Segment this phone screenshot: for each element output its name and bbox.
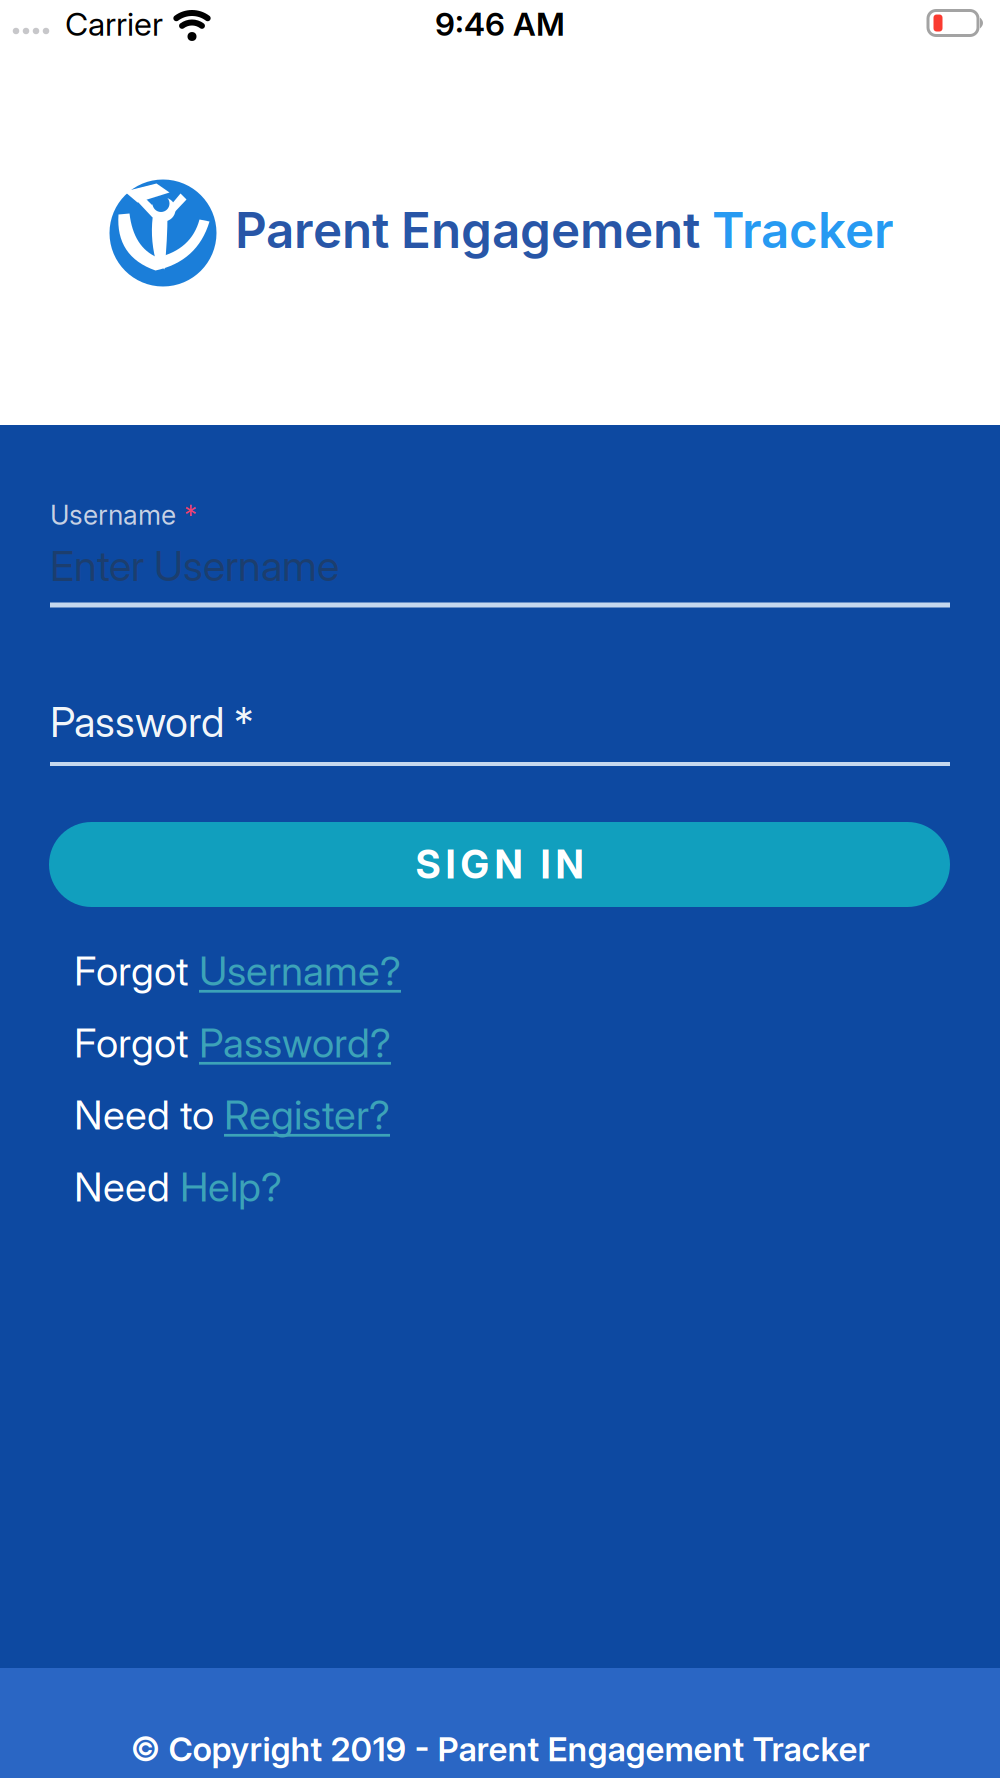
button[interactable]: Forgot <box>74 947 926 995</box>
staticText: Carrier <box>65 5 163 43</box>
staticText: SIGN IN <box>415 842 583 887</box>
staticText: Enter Username <box>50 542 339 590</box>
staticText: Forgot <box>74 947 199 995</box>
button[interactable]: Forgot <box>74 1019 926 1067</box>
staticText: Need to <box>74 1091 224 1139</box>
button[interactable]: Need to <box>74 1091 926 1139</box>
staticText: 9:46 AM <box>435 5 565 43</box>
staticText: Forgot <box>74 1019 199 1067</box>
button[interactable]: SIGN IN <box>49 822 950 907</box>
staticText: Parent Engagement <box>235 201 712 259</box>
staticText: © Copyright 2019 - Parent Engagement Tra… <box>130 1729 869 1769</box>
staticText: Need <box>74 1163 180 1211</box>
staticText: Tracker <box>712 201 894 259</box>
button[interactable]: Enter Username <box>50 529 950 607</box>
button[interactable]: Password * <box>50 688 950 768</box>
staticText: Username <box>50 499 176 531</box>
staticText: * <box>184 499 197 531</box>
staticText: Username? <box>199 947 401 995</box>
staticText: Password * <box>50 698 253 746</box>
staticText: Help? <box>180 1163 282 1211</box>
button[interactable]: Need <box>74 1163 926 1211</box>
staticText: Password? <box>199 1019 391 1067</box>
staticText: Register? <box>224 1091 390 1139</box>
